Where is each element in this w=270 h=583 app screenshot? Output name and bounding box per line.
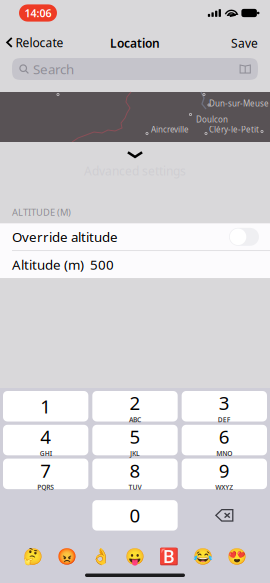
staticText: Location (110, 35, 160, 51)
button[interactable]: 6 (182, 425, 267, 455)
staticText: 😛 (125, 547, 145, 566)
button[interactable]: 0 (92, 500, 178, 531)
staticText: GHI (40, 449, 52, 458)
staticText: Doulcon (196, 114, 228, 125)
staticText: MNO (216, 449, 232, 458)
button[interactable]: Override altitude (229, 228, 259, 246)
staticText: Aincreville (151, 124, 189, 135)
button[interactable]: 7 (3, 459, 88, 489)
staticText: 🤔 (23, 547, 43, 566)
button[interactable]: 2 (92, 391, 178, 421)
staticText: Search (33, 60, 74, 78)
button[interactable]: Save (231, 26, 270, 57)
staticText: Relocate (15, 34, 63, 50)
staticText: 🅱️ (159, 547, 179, 566)
staticText: JKL (130, 449, 140, 458)
staticText: Cléry-le-Petit (209, 124, 259, 135)
staticText: TUV (128, 483, 141, 492)
button[interactable]: Delete (182, 500, 267, 531)
staticText: 1 (40, 394, 51, 419)
staticText: 7 (40, 458, 51, 483)
button[interactable]: 9 (182, 459, 267, 489)
button[interactable]: 1 (3, 391, 88, 421)
staticText: WXYZ (215, 483, 233, 492)
staticText: ALTITUDE (M) (12, 206, 71, 218)
staticText: 14:06 (24, 6, 51, 20)
staticText: DEF (218, 415, 231, 424)
staticText: 4 (40, 424, 51, 449)
staticText: Override altitude (12, 228, 118, 246)
staticText: Dun-sur-Meuse (209, 98, 269, 109)
staticText: ABC (129, 415, 141, 424)
button[interactable]: 8 (92, 459, 178, 489)
staticText: 3 (219, 390, 230, 415)
staticText: 6 (219, 424, 230, 449)
staticText: Advanced settings (84, 163, 186, 179)
staticText: 8 (129, 458, 140, 483)
button[interactable]: Relocate (0, 26, 63, 56)
staticText: 👌 (91, 547, 111, 566)
staticText: 😡 (57, 547, 77, 566)
staticText: PQRS (37, 483, 54, 492)
staticText: Altitude (m) (12, 256, 84, 273)
staticText: 0 (129, 503, 140, 528)
button[interactable]: 3 (182, 391, 267, 421)
button[interactable]: 5 (92, 425, 178, 455)
staticText: 5 (129, 424, 140, 449)
staticText: 2 (129, 390, 140, 415)
button[interactable]: 4 (3, 425, 88, 455)
button[interactable]: Search (12, 58, 258, 80)
staticText: 9 (219, 458, 230, 483)
staticText: 500 (90, 256, 114, 273)
staticText: Save (231, 35, 258, 51)
staticText: 😂 (193, 547, 213, 566)
staticText: 😍 (227, 547, 247, 566)
